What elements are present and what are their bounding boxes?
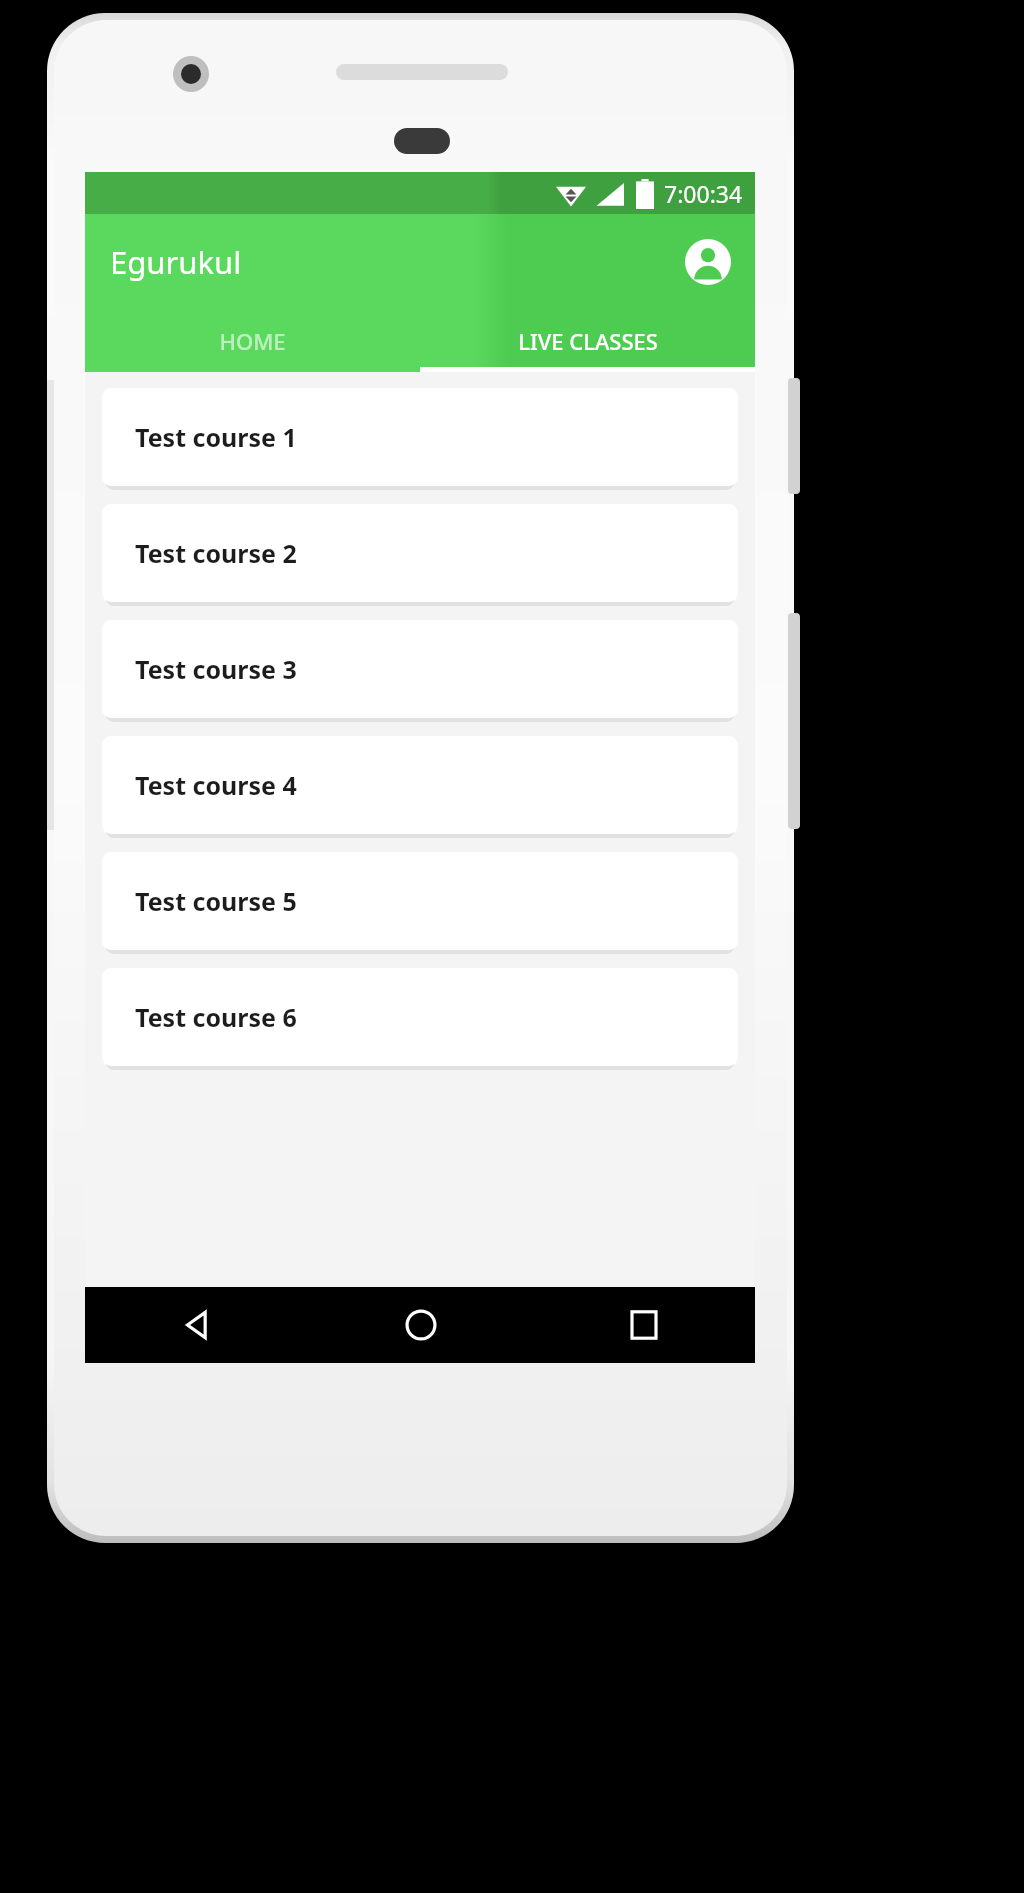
staticText: 7:00:34 <box>664 178 743 209</box>
button[interactable]: Test course 1 <box>102 388 738 486</box>
button[interactable]: Home <box>309 1287 532 1363</box>
button[interactable]: Test course 3 <box>102 620 738 718</box>
button[interactable]: LIVE CLASSES <box>420 310 755 372</box>
button[interactable]: Test course 5 <box>102 852 738 950</box>
staticText: Test course 6 <box>135 1000 297 1034</box>
button[interactable]: Back <box>85 1287 309 1363</box>
staticText: Test course 4 <box>135 768 297 802</box>
staticText: Test course 5 <box>135 884 297 918</box>
staticText: Test course 3 <box>135 652 297 686</box>
staticText: LIVE CLASSES <box>518 326 658 356</box>
staticText: Test course 1 <box>135 420 297 454</box>
staticText: HOME <box>219 326 286 356</box>
staticText: Test course 2 <box>135 536 297 570</box>
button[interactable]: Test course 6 <box>102 968 738 1066</box>
button[interactable]: Recent apps <box>532 1287 755 1363</box>
staticText: Egurukul <box>110 241 242 283</box>
button[interactable]: HOME <box>85 310 420 372</box>
button[interactable]: Test course 4 <box>102 736 738 834</box>
button[interactable]: Account <box>681 235 735 289</box>
button[interactable]: Test course 2 <box>102 504 738 602</box>
